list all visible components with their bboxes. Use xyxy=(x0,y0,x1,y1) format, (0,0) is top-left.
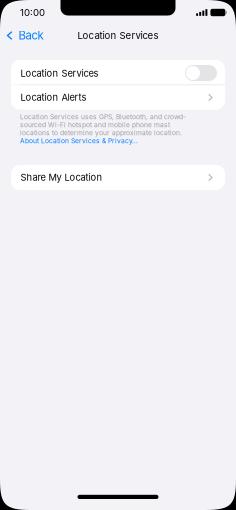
staticText: Location Services xyxy=(77,30,158,41)
staticText: Back xyxy=(18,29,43,42)
button[interactable]: Share My Location xyxy=(11,165,225,190)
button[interactable]: Location Alerts xyxy=(11,85,225,110)
staticText: About Location Services & Privacy… xyxy=(20,137,138,145)
button[interactable]: About Location Services & Privacy… xyxy=(20,137,138,145)
staticText: Share My Location xyxy=(20,172,102,183)
staticText: 10:00 xyxy=(20,7,45,18)
staticText: Location Services xyxy=(20,68,98,79)
button[interactable]: Back xyxy=(0,26,49,45)
staticText: Location Services uses GPS, Bluetooth, a… xyxy=(20,113,186,137)
staticText: Location Alerts xyxy=(20,92,86,103)
button[interactable]: Location Services xyxy=(11,60,225,84)
